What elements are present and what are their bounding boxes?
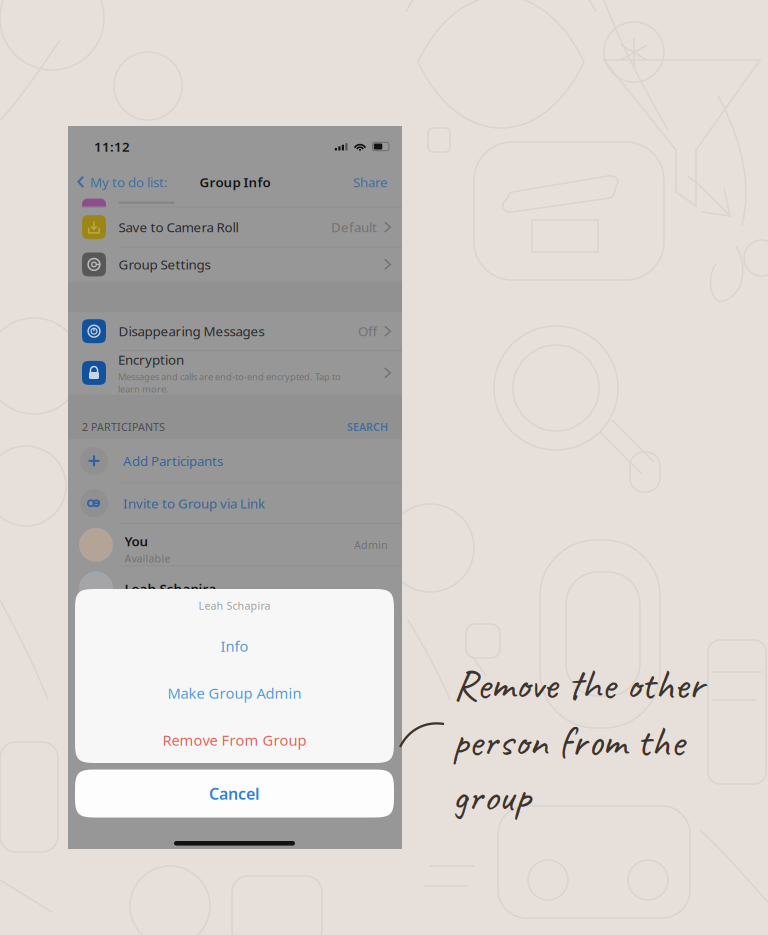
staticText: Save to Camera Roll [118, 218, 238, 236]
staticText: group [452, 769, 530, 824]
button[interactable]: My to do list: [68, 167, 174, 197]
staticText: Group Settings [118, 256, 210, 273]
button[interactable]: You [68, 524, 402, 565]
button[interactable]: Encryption [68, 351, 402, 395]
staticText: Available [124, 551, 170, 565]
button[interactable]: Make Group Admin [75, 669, 394, 716]
staticText: Share [353, 173, 388, 191]
staticText: Off [358, 322, 377, 340]
button[interactable]: Share [345, 167, 402, 197]
staticText: person from the [452, 714, 684, 769]
button[interactable]: Group Settings [68, 248, 402, 281]
staticText: You [124, 532, 148, 550]
staticText: Leah Schapira [198, 598, 270, 613]
button[interactable]: Add Participants [68, 439, 402, 482]
button[interactable]: Cancel [75, 769, 394, 817]
button[interactable]: Remove From Group [75, 716, 394, 763]
staticText: Default [331, 218, 377, 236]
staticText: Leah Schapira [124, 580, 216, 597]
button[interactable]: Info [75, 622, 394, 669]
button[interactable]: Disappearing Messages [68, 312, 402, 350]
staticText: 11:12 [94, 138, 130, 155]
staticText: Remove the other [453, 657, 704, 712]
staticText: 2 PARTICIPANTS [82, 420, 165, 434]
staticText: SEARCH [347, 420, 388, 434]
staticText: Admin [354, 538, 388, 552]
staticText: Make Group Admin [167, 683, 301, 703]
staticText: Add Participants [123, 452, 223, 470]
button[interactable]: Invite to Group via Link [68, 483, 402, 523]
button[interactable]: SEARCH [347, 420, 402, 434]
staticText: My to do list: [90, 173, 168, 191]
button[interactable]: Save to Camera Roll [68, 208, 402, 247]
staticText: Encryption [118, 351, 184, 368]
staticText: Info [220, 636, 248, 656]
staticText: Disappearing Messages [118, 322, 264, 340]
staticText: Group Info [199, 173, 270, 191]
staticText: Messages and calls are end-to-end encryp… [118, 370, 341, 395]
staticText: Cancel [209, 783, 260, 804]
staticText: Remove From Group [162, 730, 306, 750]
staticText: Invite to Group via Link [123, 494, 265, 512]
